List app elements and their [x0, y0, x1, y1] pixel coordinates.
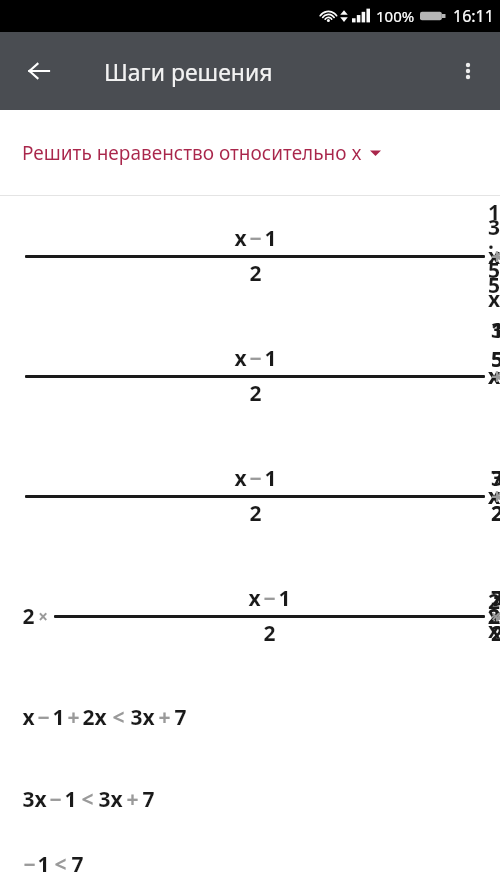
staticText: x	[22, 703, 35, 732]
staticText: 7	[174, 703, 187, 732]
staticText: Шаги решения	[104, 56, 273, 87]
staticText: 1	[264, 224, 277, 253]
staticText: 1	[264, 344, 277, 373]
staticText: 2x	[82, 703, 107, 732]
button[interactable]: More options	[444, 47, 492, 95]
button[interactable]: Решить неравенство относительно x	[0, 110, 500, 195]
staticText: +	[126, 785, 139, 814]
staticText: 100%	[376, 6, 415, 26]
button[interactable]: 2	[0, 556, 500, 676]
staticText: +	[67, 703, 80, 732]
staticText: x	[248, 584, 261, 613]
button[interactable]: x	[0, 196, 500, 316]
button[interactable]: x	[0, 316, 500, 436]
staticText: −	[249, 344, 262, 373]
staticText: ×	[38, 605, 48, 628]
button[interactable]: 3x	[0, 758, 500, 840]
button[interactable]: x	[0, 676, 500, 758]
staticText: 2	[263, 619, 276, 648]
staticText: 1	[64, 785, 77, 814]
staticText: <	[54, 850, 67, 879]
staticText: −	[249, 464, 262, 493]
staticText: 2	[249, 259, 262, 288]
staticText: −	[49, 785, 62, 814]
staticText: +	[158, 703, 171, 732]
button[interactable]: x	[0, 436, 500, 556]
button[interactable]: −	[0, 840, 500, 888]
staticText: x	[234, 464, 247, 493]
staticText: 1	[37, 850, 50, 879]
staticText: 3x	[98, 785, 123, 814]
staticText: Решить неравенство относительно x	[22, 140, 362, 166]
staticText: −	[249, 224, 262, 253]
staticText: 1	[278, 584, 291, 613]
staticText: 16:11	[453, 5, 494, 27]
staticText: 2	[22, 602, 35, 631]
staticText: 3x	[22, 785, 47, 814]
staticText: x	[234, 344, 247, 373]
staticText: 3x	[130, 703, 155, 732]
staticText: 7	[142, 785, 155, 814]
staticText: 1	[52, 703, 65, 732]
staticText: −	[23, 850, 36, 879]
staticText: <	[112, 703, 125, 732]
staticText: −	[263, 584, 276, 613]
staticText: 2	[249, 379, 262, 408]
staticText: 1	[264, 464, 277, 493]
button[interactable]: Back	[14, 46, 64, 96]
staticText: 2	[249, 499, 262, 528]
staticText: <	[81, 785, 94, 814]
staticText: x	[234, 224, 247, 253]
staticText: −	[37, 703, 50, 732]
staticText: 7	[71, 850, 84, 879]
